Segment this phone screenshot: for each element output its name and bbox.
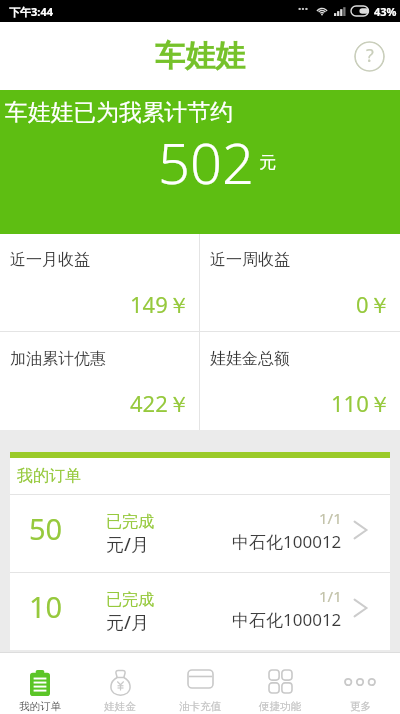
button[interactable]: 加油累计优惠 [0,332,199,430]
button[interactable]: 近一周收益 [200,234,400,331]
staticText: 我的订单 [19,700,61,713]
staticText: 110￥ [331,388,391,418]
staticText: 422￥ [130,388,190,418]
button[interactable]: 油卡充值 [160,653,240,714]
staticText: 10 [29,587,63,626]
staticText: 元/月 [106,610,149,635]
button[interactable]: 娃娃金 [80,653,160,714]
staticText: 中石化100012 [232,530,342,553]
staticText: 便捷功能 [259,700,301,713]
staticText: 我的订单 [17,466,81,486]
button[interactable]: Help [354,41,385,72]
staticText: 50 [29,509,63,548]
staticText: ··· [298,0,309,16]
staticText: 近一周收益 [210,250,290,270]
staticText: 近一月收益 [10,250,90,270]
staticText: 元 [259,152,276,173]
staticText: 车娃娃 [155,37,245,75]
staticText: 油卡充值 [179,700,221,713]
staticText: 已完成 [106,590,154,610]
staticText: 已完成 [106,512,154,532]
staticText: 车娃娃已为我累计节约 [5,98,233,127]
staticText: 502 [158,124,254,200]
button[interactable]: 我的订单 [0,653,80,714]
staticText: 娃娃金总额 [210,349,290,369]
staticText: 下午3:44 [9,4,53,19]
staticText: 149￥ [130,289,190,319]
staticText: ? [366,43,374,68]
staticText: 1/1 [319,586,342,606]
button[interactable]: 更多 [320,653,400,714]
staticText: 1/1 [319,508,342,528]
staticText: 43% [374,4,397,19]
button[interactable]: 50 [10,495,390,572]
staticText: 加油累计优惠 [10,349,106,369]
staticText: 更多 [350,700,371,713]
button[interactable]: 便捷功能 [240,653,320,714]
staticText: 元/月 [106,532,149,557]
staticText: 中石化100012 [232,608,342,631]
button[interactable]: 10 [10,573,390,650]
staticText: 娃娃金 [104,700,136,713]
button[interactable]: 近一月收益 [0,234,199,331]
button[interactable]: 娃娃金总额 [200,332,400,430]
staticText: 0￥ [356,289,391,319]
